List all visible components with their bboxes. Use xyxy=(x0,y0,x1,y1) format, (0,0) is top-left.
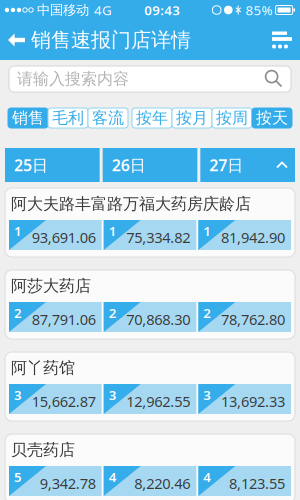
staticText: 请输入搜索内容 xyxy=(17,69,129,89)
staticText: 70,868.30 xyxy=(126,309,190,329)
staticText: 81,942.90 xyxy=(221,227,285,247)
button[interactable]: 请输入搜索内容 xyxy=(9,66,291,92)
button[interactable]: 按周 xyxy=(212,108,252,128)
staticText: 8,220.46 xyxy=(134,473,190,493)
staticText: 按周 xyxy=(216,108,248,128)
staticText: 15,662.87 xyxy=(32,391,96,411)
staticText: 2 xyxy=(109,304,117,322)
staticText: 85% xyxy=(246,1,273,19)
staticText: 13,692.33 xyxy=(221,391,285,411)
staticText: 1 xyxy=(109,222,117,240)
button[interactable]: 菜单 xyxy=(264,20,300,60)
button[interactable]: 毛利 xyxy=(48,108,88,128)
button[interactable]: 按年 xyxy=(132,108,172,128)
staticText: 1 xyxy=(203,222,211,240)
staticText: 75,334.82 xyxy=(126,227,190,247)
staticText: 按年 xyxy=(136,108,168,128)
staticText: 4 xyxy=(109,468,117,486)
staticText: 中国移动 xyxy=(37,2,89,18)
staticText: 12,962.55 xyxy=(126,391,190,411)
button[interactable]: 阿大夫路丰富路万福大药房庆龄店 xyxy=(5,188,295,257)
staticText: 25日 xyxy=(14,154,48,176)
staticText: 4 xyxy=(203,468,211,486)
button[interactable]: 按天 xyxy=(252,108,292,128)
button[interactable]: 27日 xyxy=(200,148,295,182)
button[interactable]: 25日 xyxy=(5,148,100,182)
staticText: 27日 xyxy=(209,154,243,176)
staticText: 78,762.80 xyxy=(221,309,285,329)
staticText: 销售 xyxy=(12,108,44,128)
staticText: 2 xyxy=(14,304,22,322)
staticText: 按月 xyxy=(176,108,208,128)
staticText: 阿莎大药店 xyxy=(11,276,91,296)
staticText: 93,691.06 xyxy=(32,227,96,247)
staticText: 1 xyxy=(14,222,22,240)
staticText: 贝壳药店 xyxy=(11,440,75,460)
staticText: 毛利 xyxy=(52,108,84,128)
staticText: 销售速报门店详情 xyxy=(31,28,191,52)
button[interactable]: 贝壳药店 xyxy=(5,434,295,500)
button[interactable]: 阿丫药馆 xyxy=(5,352,295,421)
button[interactable]: 26日 xyxy=(103,148,197,182)
staticText: 客流 xyxy=(92,108,124,128)
staticText: 3 xyxy=(14,386,22,404)
staticText: 09:43 xyxy=(144,1,180,19)
staticText: 3 xyxy=(109,386,117,404)
staticText: 按天 xyxy=(256,108,288,128)
staticText: 阿丫药馆 xyxy=(11,358,75,378)
button[interactable]: 按月 xyxy=(172,108,212,128)
staticText: 5 xyxy=(14,468,22,486)
staticText: 8,123.55 xyxy=(229,473,285,493)
staticText: 2 xyxy=(203,304,211,322)
staticText: 阿大夫路丰富路万福大药房庆龄店 xyxy=(11,194,251,214)
button[interactable]: 销售 xyxy=(8,108,48,128)
staticText: 26日 xyxy=(112,154,146,176)
staticText: 3 xyxy=(203,386,211,404)
staticText: 9,342.78 xyxy=(40,473,96,493)
staticText: 4G xyxy=(94,1,112,19)
staticText: 87,791.06 xyxy=(32,309,96,329)
button[interactable]: 返回 xyxy=(0,20,31,60)
button[interactable]: 阿莎大药店 xyxy=(5,270,295,339)
button[interactable]: 客流 xyxy=(88,108,128,128)
